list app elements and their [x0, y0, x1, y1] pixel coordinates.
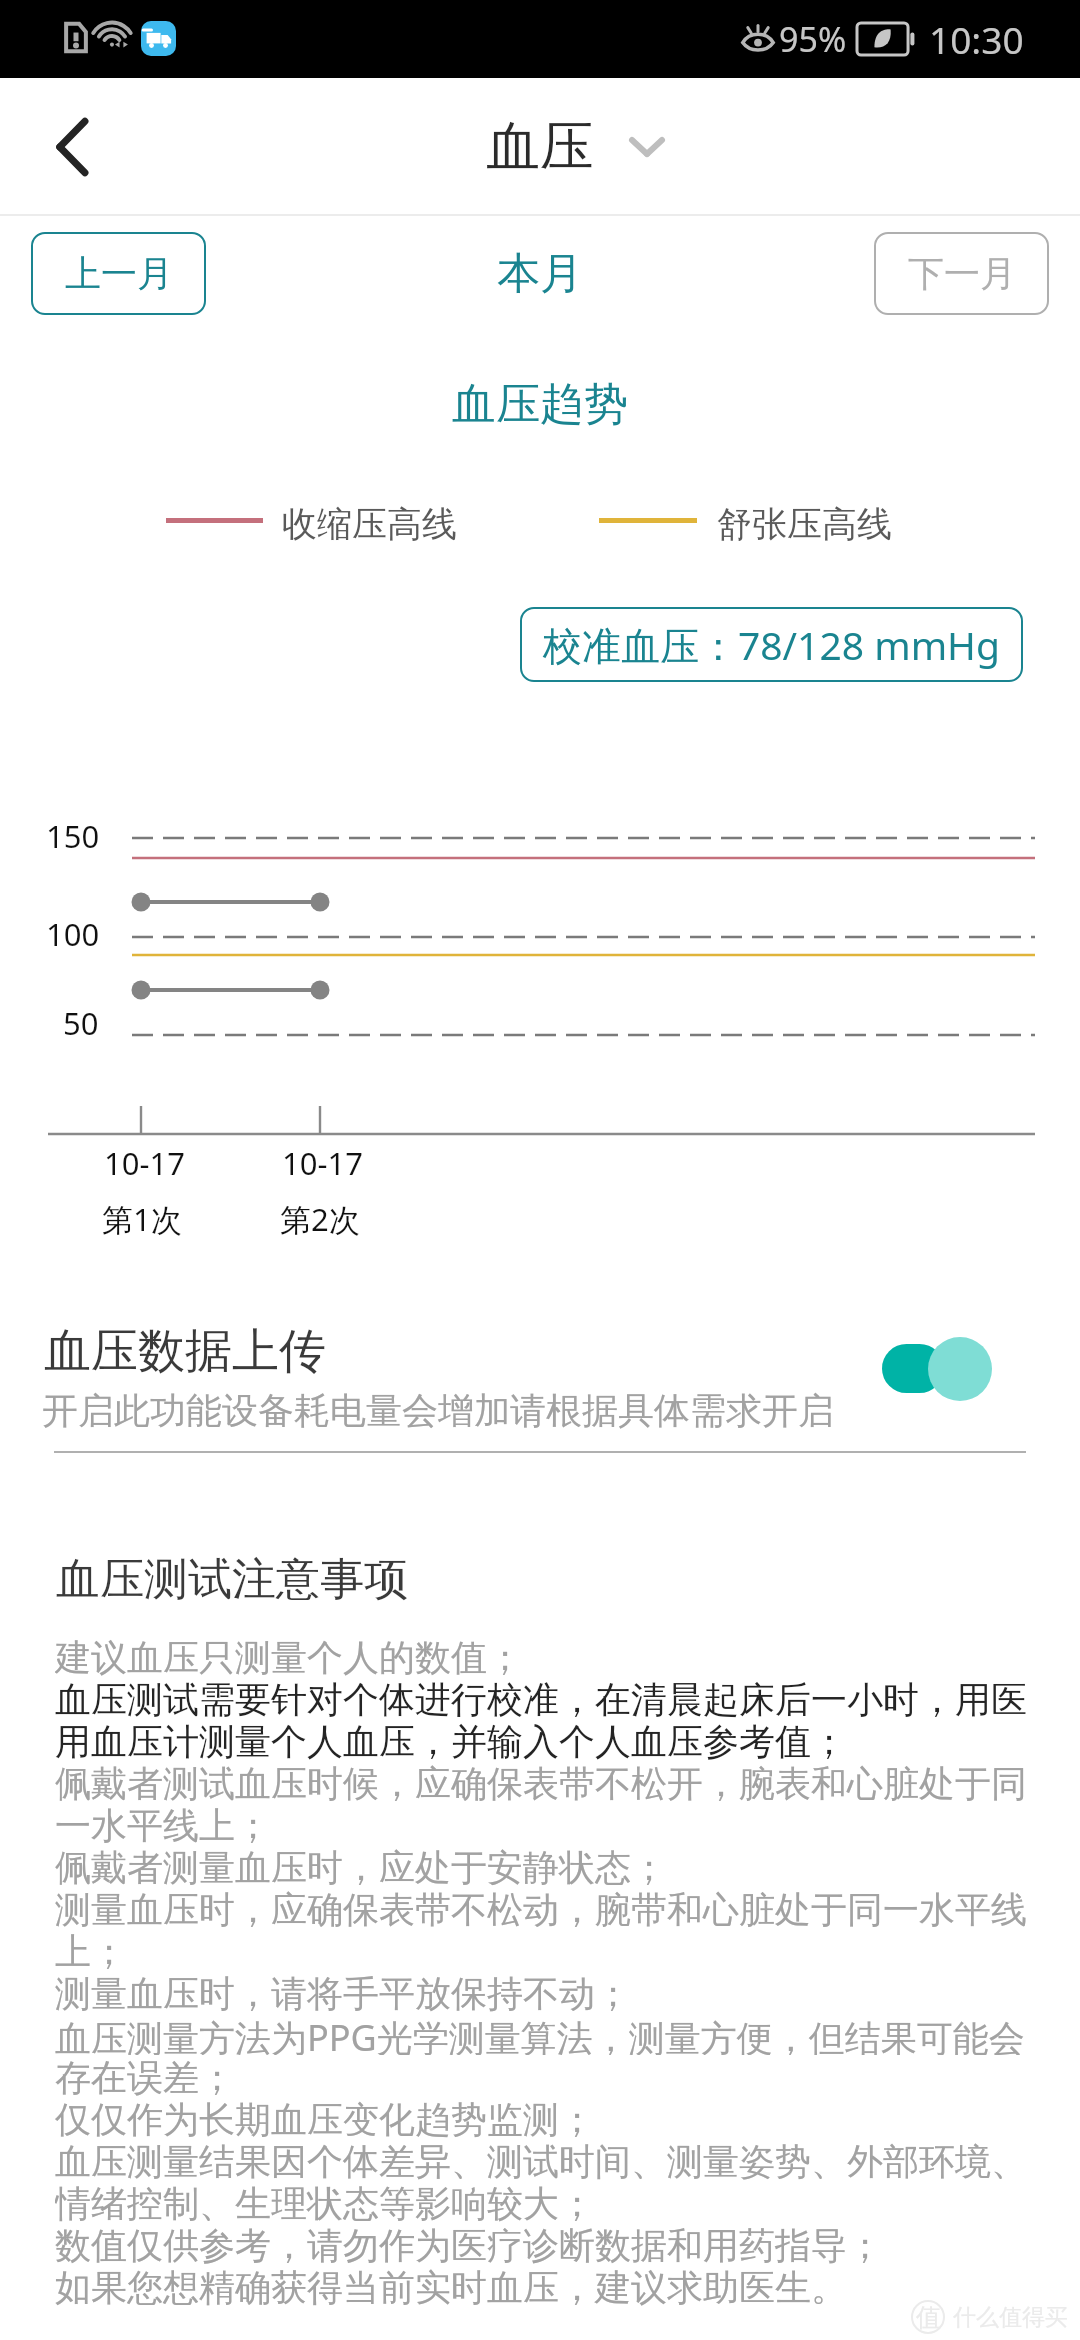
- staticText: 开启此功能设备耗电量会增加请根据具体需求开启: [42, 1388, 834, 1433]
- staticText: 测量血压时，请将手平放保持不动；: [55, 1971, 631, 2013]
- staticText: 10-17: [282, 1142, 363, 1184]
- button[interactable]: 下一月: [874, 232, 1049, 315]
- staticText: 上一月: [65, 251, 173, 296]
- staticText: 下一月: [908, 251, 1016, 296]
- staticText: 血压测量方法为PPG光学测量算法，测量方便，但结果可能会: [55, 2013, 1025, 2055]
- staticText: 血压: [486, 113, 594, 181]
- button[interactable]: 校准血压：78/128 mmHg: [520, 607, 1023, 682]
- staticText: 第1次: [102, 1198, 182, 1240]
- staticText: 10:30: [929, 14, 1024, 64]
- staticText: 如果您想精确获得当前实时血压，建议求助医生。: [55, 2265, 847, 2307]
- button[interactable]: 本月: [452, 232, 627, 315]
- staticText: 95%: [779, 16, 847, 62]
- staticText: 一水平线上；: [55, 1803, 271, 1845]
- button[interactable]: Back: [18, 78, 126, 216]
- staticText: 什么值得买: [953, 2303, 1068, 2332]
- staticText: 血压数据上传: [44, 1322, 326, 1381]
- staticText: 上；: [55, 1929, 127, 1971]
- staticText: 舒张压高线: [717, 502, 892, 546]
- staticText: 情绪控制、生理状态等影响较大；: [55, 2181, 595, 2223]
- staticText: 值: [916, 2302, 941, 2333]
- staticText: 测量血压时，应确保表带不松动，腕带和心脏处于同一水平线: [55, 1887, 1027, 1929]
- button[interactable]: Toggle blood pressure upload: [876, 1335, 996, 1409]
- staticText: 用血压计测量个人血压，并输入个人血压参考值；: [55, 1719, 847, 1761]
- staticText: 第2次: [280, 1198, 360, 1240]
- staticText: 150: [46, 815, 100, 857]
- staticText: 校准血压：78/128 mmHg: [543, 618, 1001, 671]
- staticText: 血压测试需要针对个体进行校准，在清晨起床后一小时，用医: [55, 1677, 1027, 1719]
- button[interactable]: 上一月: [31, 232, 206, 315]
- staticText: 仅仅作为长期血压变化趋势监测；: [55, 2097, 595, 2139]
- staticText: 100: [46, 913, 100, 955]
- staticText: 收缩压高线: [282, 502, 457, 546]
- staticText: 建议血压只测量个人的数值；: [55, 1635, 523, 1677]
- staticText: 佩戴者测试血压时候，应确保表带不松开，腕表和心脏处于同: [55, 1761, 1027, 1803]
- staticText: 本月: [497, 247, 583, 301]
- button[interactable]: 血压: [482, 107, 668, 187]
- staticText: 血压测量结果因个体差异、测试时间、测量姿势、外部环境、: [55, 2139, 1027, 2181]
- staticText: 血压趋势: [452, 377, 628, 432]
- staticText: 50: [63, 1002, 99, 1044]
- staticText: 血压测试注意事项: [56, 1552, 408, 1604]
- staticText: 10-17: [104, 1142, 185, 1184]
- staticText: 数值仅供参考，请勿作为医疗诊断数据和用药指导；: [55, 2223, 883, 2265]
- staticText: 佩戴者测量血压时，应处于安静状态；: [55, 1845, 667, 1887]
- staticText: 存在误差；: [55, 2055, 235, 2097]
